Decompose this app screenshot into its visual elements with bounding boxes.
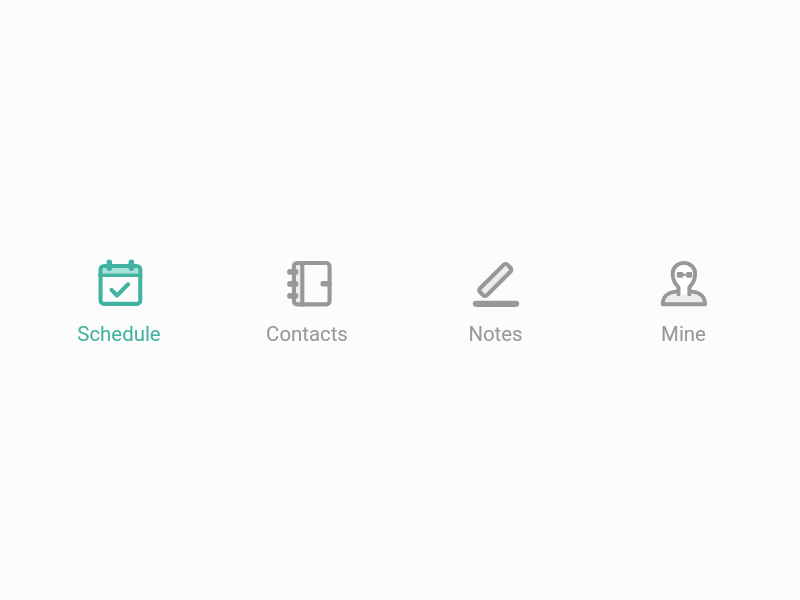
button[interactable]: Mine tab — [608, 256, 758, 346]
staticText: Notes — [468, 322, 523, 346]
staticText: Contacts — [266, 322, 348, 346]
button[interactable]: Schedule tab — [44, 256, 194, 346]
button[interactable]: Contacts tab — [232, 256, 382, 346]
button[interactable]: Notes tab — [420, 256, 570, 346]
staticText: Schedule — [77, 322, 161, 346]
staticText: Mine — [661, 322, 706, 346]
